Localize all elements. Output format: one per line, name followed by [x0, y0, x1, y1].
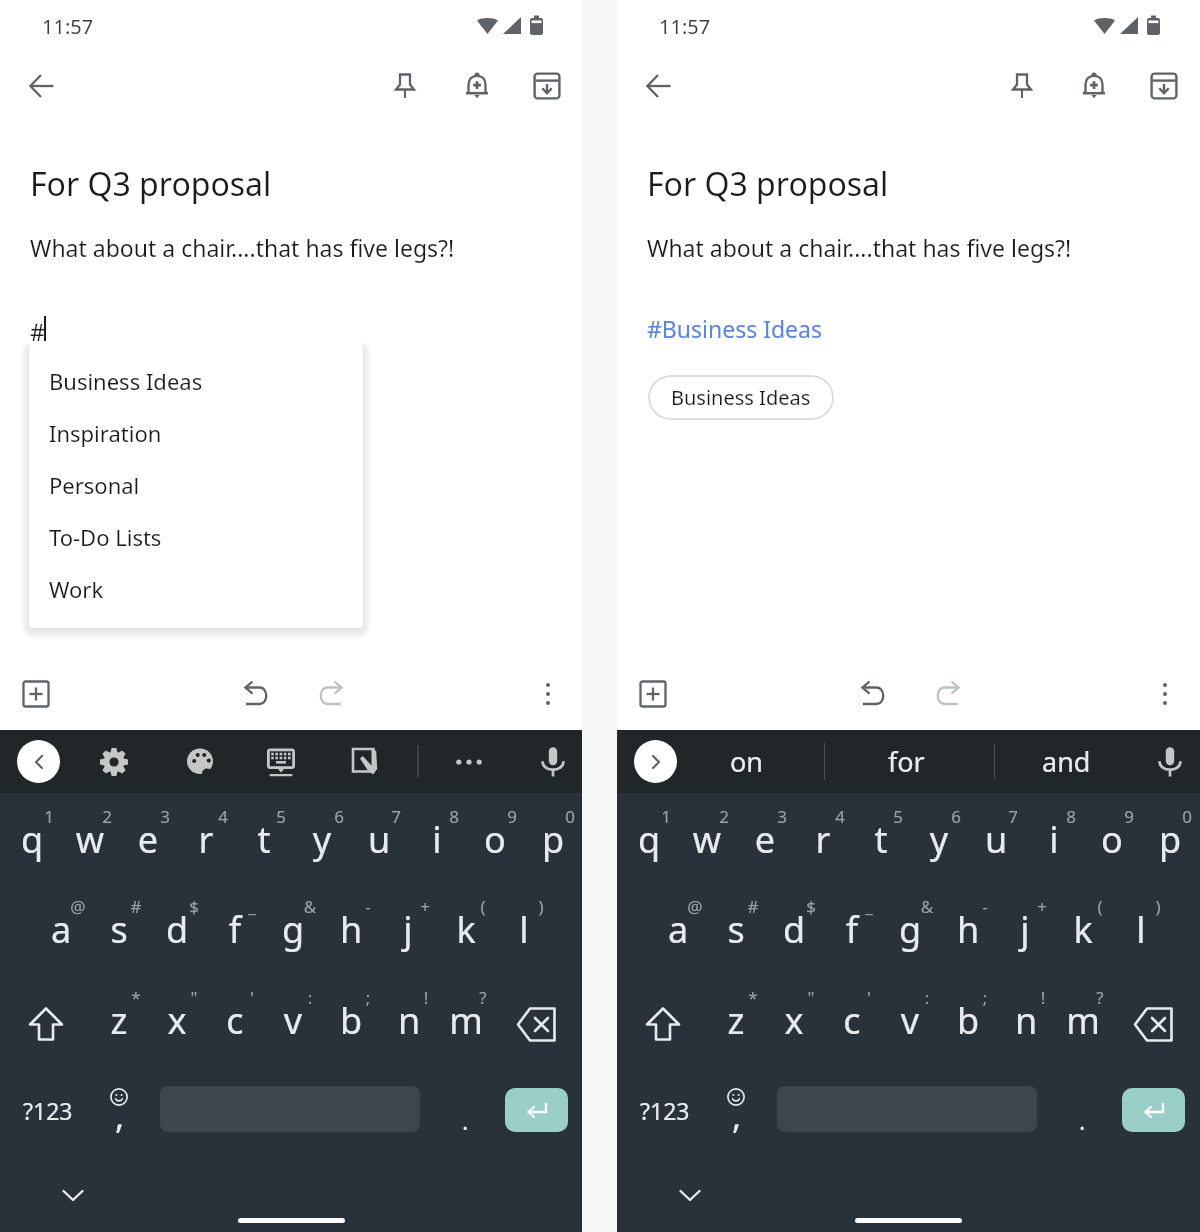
button[interactable]: 1: [3, 796, 61, 886]
button[interactable]: 8: [1025, 796, 1083, 886]
button[interactable]: Hide keyboard: [50, 1163, 94, 1207]
button[interactable]: 5: [235, 796, 293, 886]
button[interactable]: (: [437, 886, 495, 976]
button[interactable]: Undo: [233, 669, 281, 717]
button[interactable]: ): [1112, 886, 1170, 976]
button[interactable]: +: [996, 886, 1054, 976]
button[interactable]: 9: [1083, 796, 1141, 886]
button[interactable]: #: [90, 886, 148, 976]
button[interactable]: Back: [635, 62, 683, 110]
button[interactable]: More options: [1141, 670, 1189, 718]
button[interactable]: $: [148, 886, 206, 976]
button[interactable]: !: [380, 977, 438, 1067]
button[interactable]: Expand toolbar: [17, 740, 60, 783]
button[interactable]: ;: [939, 977, 997, 1067]
button[interactable]: ': [206, 977, 264, 1067]
button[interactable]: 0: [524, 796, 582, 886]
button[interactable]: Voice input: [1146, 738, 1194, 786]
button[interactable]: Sticker: [342, 738, 390, 786]
button[interactable]: on: [687, 737, 807, 786]
button[interactable]: Back: [18, 62, 66, 110]
button[interactable]: *: [707, 977, 765, 1067]
button[interactable]: ": [148, 977, 206, 1067]
button[interactable]: ?: [437, 977, 495, 1067]
button[interactable]: Enter: [1122, 1088, 1185, 1132]
button[interactable]: Pin: [381, 62, 429, 110]
button[interactable]: 9: [466, 796, 524, 886]
button[interactable]: To-Do Lists: [29, 511, 363, 563]
button[interactable]: &: [264, 886, 322, 976]
button[interactable]: 4: [177, 796, 235, 886]
button[interactable]: 7: [350, 796, 408, 886]
button[interactable]: Backspace: [1113, 977, 1197, 1067]
button[interactable]: 5: [852, 796, 910, 886]
button[interactable]: ?: [1054, 977, 1112, 1067]
button[interactable]: Enter: [505, 1088, 568, 1132]
button[interactable]: Add: [629, 670, 677, 718]
button[interactable]: ;: [322, 977, 380, 1067]
button[interactable]: 6: [293, 796, 351, 886]
button[interactable]: @: [649, 886, 707, 976]
button[interactable]: 8: [408, 796, 466, 886]
button[interactable]: :: [881, 977, 939, 1067]
button[interactable]: 3: [119, 796, 177, 886]
button[interactable]: Settings: [90, 738, 138, 786]
button[interactable]: Archive: [523, 62, 571, 110]
button[interactable]: #: [707, 886, 765, 976]
button[interactable]: Redo: [921, 669, 969, 717]
button[interactable]: and: [1006, 737, 1126, 786]
button[interactable]: !: [997, 977, 1055, 1067]
button[interactable]: Theme: [176, 738, 224, 786]
button[interactable]: Work: [29, 563, 363, 615]
button[interactable]: 3: [736, 796, 794, 886]
button[interactable]: 6: [910, 796, 968, 886]
button[interactable]: 2: [678, 796, 736, 886]
button[interactable]: -: [939, 886, 997, 976]
button[interactable]: *: [90, 977, 148, 1067]
button[interactable]: Hide keyboard: [667, 1163, 711, 1207]
button[interactable]: Voice input: [529, 738, 577, 786]
button[interactable]: 1: [620, 796, 678, 886]
button[interactable]: @: [32, 886, 90, 976]
button[interactable]: 4: [794, 796, 852, 886]
button[interactable]: .: [424, 1070, 482, 1160]
button[interactable]: Emoji: [711, 1070, 769, 1160]
button[interactable]: Redo: [304, 669, 352, 717]
button[interactable]: .: [1041, 1070, 1099, 1160]
button[interactable]: Reminder: [452, 62, 500, 110]
button[interactable]: _: [823, 886, 881, 976]
button[interactable]: 7: [967, 796, 1025, 886]
button[interactable]: Keyboard mode: [257, 738, 305, 786]
button[interactable]: Collapse toolbar: [634, 740, 677, 783]
button[interactable]: -: [322, 886, 380, 976]
button[interactable]: More options: [524, 670, 572, 718]
button[interactable]: More: [445, 738, 493, 786]
button[interactable]: Add: [12, 670, 60, 718]
button[interactable]: Shift: [621, 977, 705, 1067]
button[interactable]: (: [1054, 886, 1112, 976]
button[interactable]: Personal: [29, 459, 363, 511]
button[interactable]: +: [379, 886, 437, 976]
button[interactable]: Emoji: [94, 1070, 152, 1160]
button[interactable]: 0: [1141, 796, 1199, 886]
button[interactable]: Shift: [4, 977, 88, 1067]
button[interactable]: Archive: [1140, 62, 1188, 110]
button[interactable]: ?123: [0, 1070, 94, 1160]
button[interactable]: ": [765, 977, 823, 1067]
button[interactable]: $: [765, 886, 823, 976]
button[interactable]: Backspace: [496, 977, 580, 1067]
button[interactable]: Business Ideas: [648, 375, 834, 420]
button[interactable]: ): [495, 886, 553, 976]
button[interactable]: &: [881, 886, 939, 976]
button[interactable]: :: [264, 977, 322, 1067]
button[interactable]: Inspiration: [29, 407, 363, 459]
button[interactable]: Pin: [998, 62, 1046, 110]
button[interactable]: for: [846, 737, 966, 786]
button[interactable]: Undo: [850, 669, 898, 717]
button[interactable]: ': [823, 977, 881, 1067]
button[interactable]: ?123: [617, 1070, 711, 1160]
button[interactable]: Reminder: [1069, 62, 1117, 110]
button[interactable]: _: [206, 886, 264, 976]
